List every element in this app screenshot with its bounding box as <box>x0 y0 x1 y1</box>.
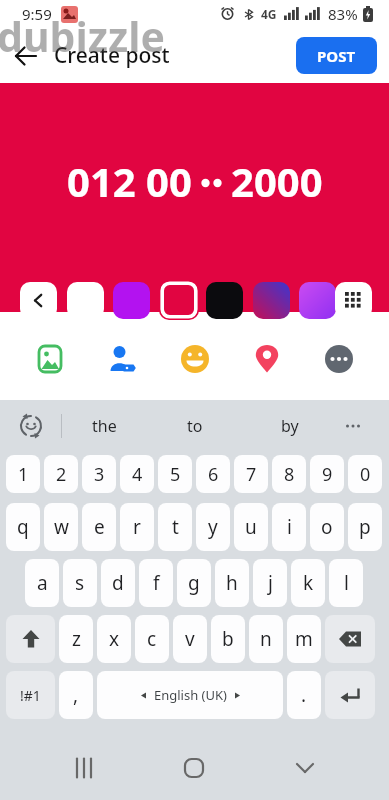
button[interactable]: e <box>82 503 116 551</box>
button[interactable] <box>0 400 61 452</box>
button[interactable]: m <box>287 615 321 663</box>
staticText: x <box>109 626 120 652</box>
button[interactable]: l <box>329 559 363 607</box>
button[interactable] <box>67 282 104 319</box>
button[interactable]: English (UK) <box>97 671 283 719</box>
button[interactable] <box>102 339 142 379</box>
staticText: v <box>185 626 195 652</box>
button[interactable] <box>8 38 44 74</box>
button[interactable]: d <box>101 559 135 607</box>
button[interactable]: y <box>196 503 230 551</box>
button[interactable]: n <box>249 615 283 663</box>
button[interactable] <box>335 282 372 319</box>
staticText: by <box>281 415 299 437</box>
staticText: t <box>172 514 179 540</box>
button[interactable]: v <box>173 615 207 663</box>
button[interactable] <box>253 282 290 319</box>
staticText: 3 <box>94 462 105 487</box>
button[interactable]: 2 <box>44 455 78 493</box>
button[interactable]: t <box>158 503 192 551</box>
button[interactable]: 7 <box>234 455 268 493</box>
button[interactable] <box>299 282 336 319</box>
button[interactable]: POST <box>296 37 377 74</box>
staticText: the <box>92 415 117 437</box>
staticText: , <box>73 682 79 708</box>
button[interactable]: j <box>253 559 287 607</box>
button[interactable] <box>337 400 369 452</box>
button[interactable]: 8 <box>272 455 306 493</box>
button[interactable]: . <box>287 671 321 719</box>
staticText: 4 <box>132 462 143 487</box>
staticText: dubizzle <box>0 8 165 64</box>
button[interactable]: q <box>6 503 40 551</box>
button[interactable] <box>113 282 150 319</box>
staticText: f <box>153 570 160 596</box>
staticText: e <box>94 514 105 540</box>
button[interactable]: b <box>211 615 245 663</box>
button[interactable]: z <box>59 615 93 663</box>
button[interactable] <box>172 746 216 790</box>
staticText: a <box>37 570 48 596</box>
button[interactable]: g <box>177 559 211 607</box>
staticText: b <box>222 626 234 652</box>
button[interactable] <box>6 615 55 663</box>
button[interactable]: the <box>62 400 147 452</box>
button[interactable] <box>206 282 243 319</box>
button[interactable]: x <box>97 615 131 663</box>
staticText: 9:59 <box>22 4 52 24</box>
button[interactable]: !#1 <box>6 671 55 719</box>
button[interactable] <box>175 339 215 379</box>
button[interactable]: 6 <box>196 455 230 493</box>
button[interactable]: 1 <box>6 455 40 493</box>
staticText: 0 <box>360 462 371 487</box>
button[interactable]: w <box>44 503 78 551</box>
staticText: 1 <box>18 462 29 487</box>
staticText: 9 <box>322 462 333 487</box>
button[interactable] <box>283 746 327 790</box>
staticText: to <box>187 415 203 437</box>
button[interactable]: k <box>291 559 325 607</box>
staticText: 012 00 <box>67 154 192 208</box>
button[interactable] <box>325 615 375 663</box>
staticText: g <box>188 570 200 596</box>
button[interactable]: 5 <box>158 455 192 493</box>
button[interactable]: to <box>147 400 242 452</box>
button[interactable]: s <box>63 559 97 607</box>
button[interactable]: , <box>59 671 93 719</box>
button[interactable]: by <box>242 400 337 452</box>
staticText: m <box>295 626 313 652</box>
button[interactable]: u <box>234 503 268 551</box>
button[interactable] <box>30 339 70 379</box>
button[interactable] <box>325 671 375 719</box>
staticText: 6 <box>208 462 219 487</box>
staticText: 7 <box>246 462 257 487</box>
button[interactable]: 3 <box>82 455 116 493</box>
button[interactable]: h <box>215 559 249 607</box>
staticText: 2 <box>56 462 67 487</box>
staticText: z <box>72 626 81 652</box>
staticText: d <box>112 570 124 596</box>
staticText: u <box>245 514 257 540</box>
button[interactable] <box>20 282 57 319</box>
staticText: k <box>303 570 314 596</box>
button[interactable]: 9 <box>310 455 344 493</box>
button[interactable] <box>319 339 359 379</box>
button[interactable]: a <box>25 559 59 607</box>
button[interactable] <box>159 280 199 320</box>
staticText: 2000 <box>231 154 323 208</box>
button[interactable]: p <box>348 503 382 551</box>
staticText: l <box>344 570 349 596</box>
button[interactable]: 4 <box>120 455 154 493</box>
button[interactable]: c <box>135 615 169 663</box>
staticText: 8 <box>284 462 295 487</box>
button[interactable]: o <box>310 503 344 551</box>
button[interactable]: i <box>272 503 306 551</box>
staticText: o <box>321 514 333 540</box>
button[interactable]: f <box>139 559 173 607</box>
staticText: q <box>17 514 29 540</box>
button[interactable]: r <box>120 503 154 551</box>
button[interactable]: 0 <box>348 455 382 493</box>
button[interactable] <box>247 339 287 379</box>
staticText: j <box>268 570 273 596</box>
button[interactable] <box>62 746 106 790</box>
